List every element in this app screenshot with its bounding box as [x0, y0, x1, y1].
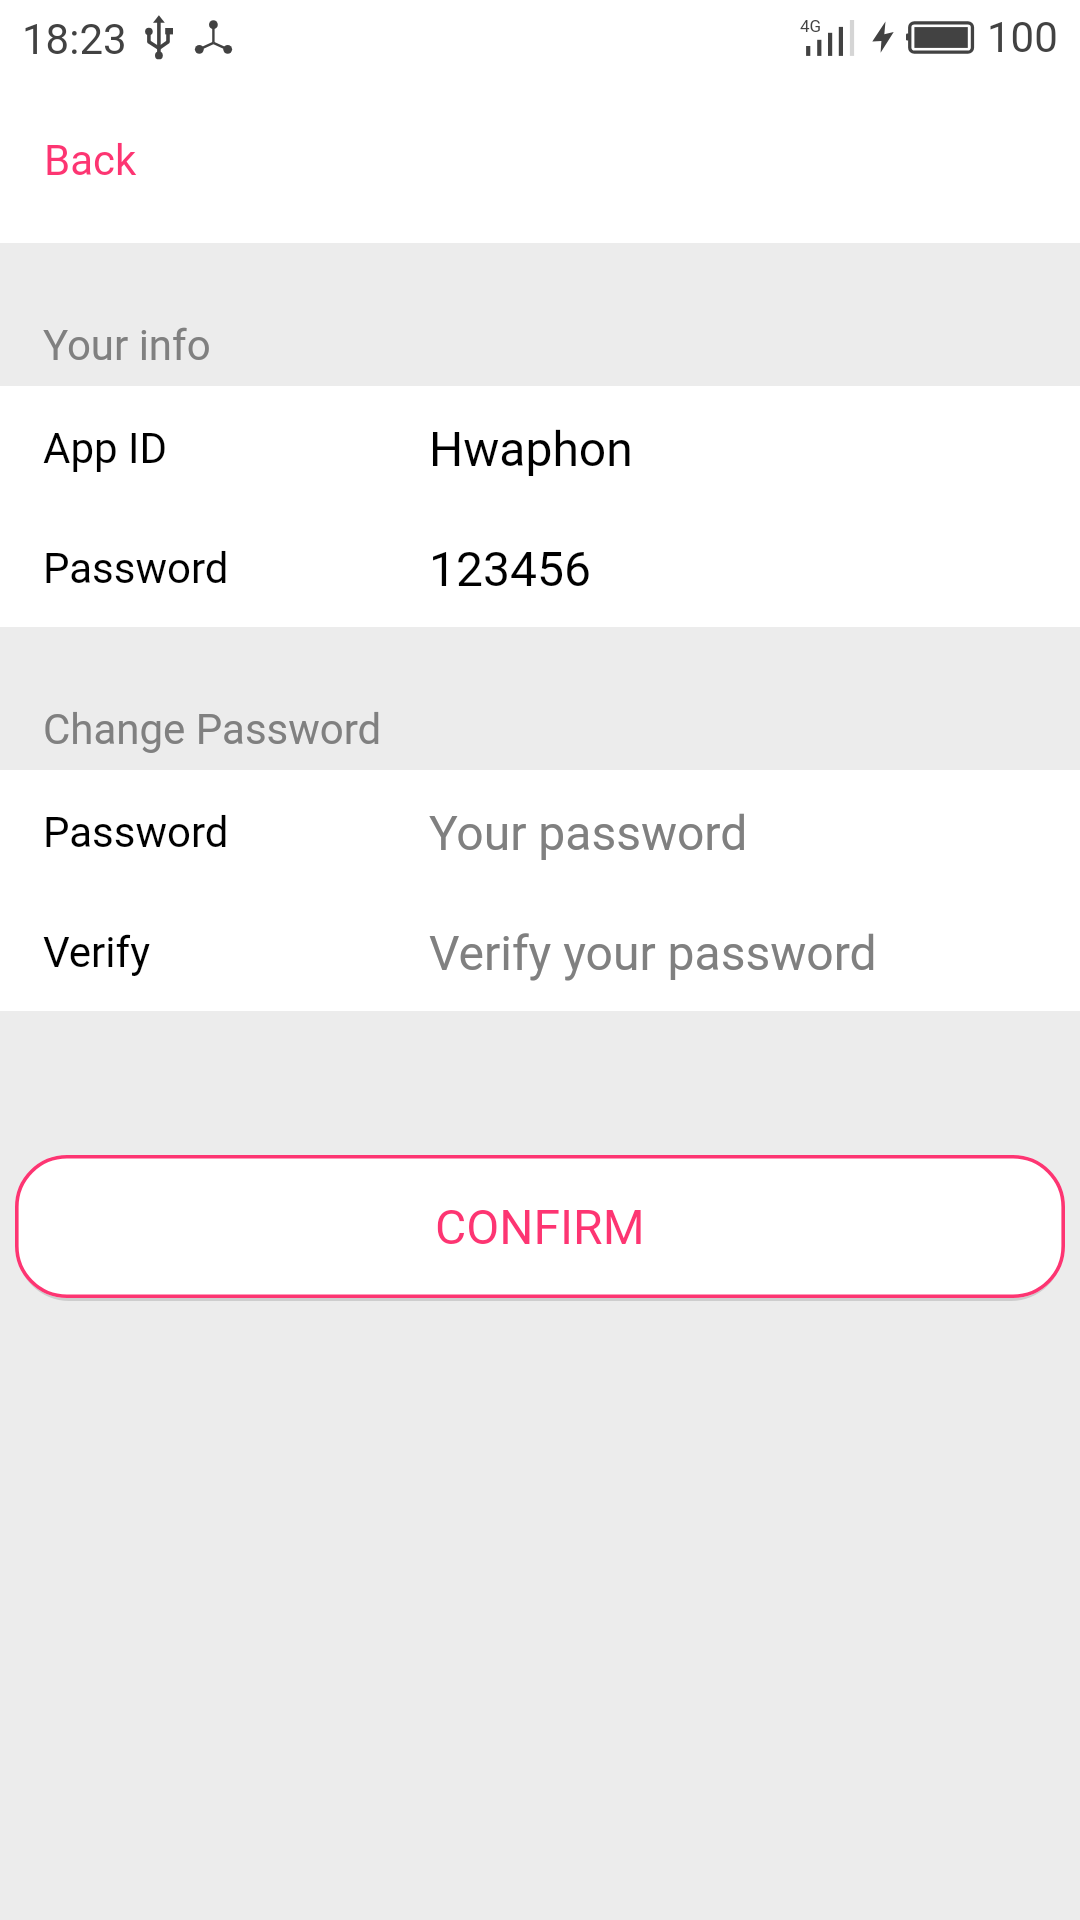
button[interactable]: Password: [0, 770, 1080, 890]
staticText: 123456: [429, 541, 591, 597]
button[interactable]: Verify: [0, 890, 1080, 1010]
button[interactable]: Back: [12, 105, 169, 216]
staticText: Back: [44, 136, 137, 185]
staticText: CONFIRM: [435, 1199, 645, 1255]
staticText: App ID: [43, 424, 167, 473]
staticText: 18:23: [22, 15, 127, 64]
staticText: Hwaphon: [429, 421, 633, 477]
staticText: Verify: [43, 928, 151, 977]
staticText: Password: [43, 808, 229, 857]
button[interactable]: App ID: [0, 386, 1080, 506]
staticText: 100: [987, 13, 1058, 62]
other: Battery full: [906, 21, 975, 54]
button[interactable]: CONFIRM: [15, 1155, 1065, 1298]
staticText: Verify your password: [429, 925, 877, 981]
button[interactable]: Password: [0, 506, 1080, 626]
other: Cast: [195, 20, 233, 54]
staticText: Password: [43, 544, 229, 593]
staticText: Your info: [43, 321, 211, 370]
other: Charging: [872, 21, 894, 53]
staticText: 4G: [800, 16, 822, 36]
other: USB connected: [147, 15, 173, 60]
other: 4G signal strength: [803, 19, 855, 57]
staticText: Your password: [429, 805, 748, 861]
staticText: Change Password: [43, 705, 382, 754]
